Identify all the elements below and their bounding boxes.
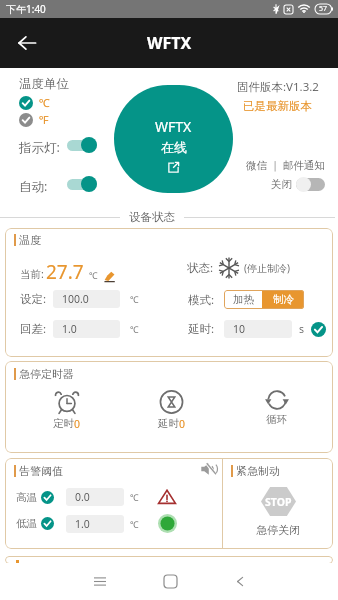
staticText: ℃: [130, 518, 139, 530]
button[interactable]: Switch: [67, 137, 97, 153]
button[interactable]: Back: [9, 25, 45, 61]
staticText: 回差:: [20, 321, 47, 337]
button[interactable]: Switch: [296, 177, 325, 192]
button[interactable]: 1.0: [53, 320, 120, 338]
button[interactable]: 循环: [239, 390, 314, 426]
staticText: STOP: [265, 495, 292, 509]
staticText: 紧急制动: [236, 464, 280, 478]
staticText: 已是最新版本: [243, 99, 312, 113]
staticText: 告警阈值: [19, 464, 63, 478]
staticText: 状态:: [187, 260, 214, 276]
button[interactable]: 定时: [29, 390, 104, 431]
staticText: 设备状态: [129, 210, 175, 224]
staticText: 固件版本:V1.3.2: [237, 79, 319, 95]
button[interactable]: 延时: [134, 390, 209, 431]
button[interactable]: Home: [135, 563, 205, 600]
staticText: 1.0: [75, 517, 90, 531]
staticText: 27.7: [46, 259, 84, 285]
staticText: 自动:: [19, 178, 48, 195]
staticText: 0.0: [75, 490, 90, 504]
button[interactable]: 10: [224, 320, 292, 338]
staticText: 低温: [16, 517, 37, 530]
staticText: 1.0: [62, 322, 77, 336]
staticText: 在线: [161, 139, 187, 155]
staticText: ℃: [89, 269, 98, 281]
button[interactable]: STOP: [228, 487, 328, 537]
button[interactable]: 加热: [224, 290, 262, 309]
staticText: 设定:: [20, 291, 47, 307]
staticText: 延时: [158, 417, 179, 430]
staticText: 关闭: [271, 178, 292, 191]
staticText: WFTX: [155, 117, 192, 136]
staticText: 微信 ｜ 邮件通知: [246, 158, 325, 172]
staticText: (停止制冷): [244, 261, 290, 275]
button[interactable]: WFTX: [114, 85, 233, 193]
staticText: 急停关闭: [256, 523, 300, 537]
staticText: ℃: [39, 95, 50, 110]
staticText: 延时:: [188, 321, 215, 337]
staticText: 下午1:40: [6, 2, 46, 16]
staticText: 循环: [266, 413, 287, 426]
button[interactable]: 1.0: [66, 515, 124, 533]
staticText: 当前:: [20, 267, 44, 281]
staticText: 加热: [233, 293, 254, 306]
button[interactable]: 制冷: [262, 290, 304, 309]
button[interactable]: 100.0: [53, 290, 120, 308]
staticText: ℃: [130, 491, 139, 503]
staticText: 温度: [19, 233, 41, 247]
staticText: 温度单位: [19, 76, 69, 92]
staticText: 指示灯:: [19, 139, 60, 156]
button[interactable]: Mute: [201, 463, 216, 475]
staticText: ℃: [130, 293, 139, 305]
staticText: 100.0: [62, 292, 89, 306]
staticText: 高温: [16, 491, 37, 504]
staticText: ℉: [39, 112, 49, 127]
staticText: 急停定时器: [19, 367, 74, 381]
staticText: ℃: [130, 323, 139, 335]
staticText: WFTX: [147, 32, 192, 54]
button[interactable]: Recents: [64, 563, 135, 600]
staticText: 制冷: [273, 293, 294, 306]
staticText: 0: [179, 417, 186, 431]
staticText: 0: [74, 417, 81, 431]
staticText: 定时: [53, 417, 74, 430]
button[interactable]: 0.0: [66, 488, 124, 506]
button[interactable]: Switch: [67, 176, 97, 192]
staticText: 模式:: [188, 292, 215, 308]
staticText: 57: [319, 4, 328, 14]
staticText: s: [299, 322, 305, 336]
staticText: 10: [233, 322, 246, 336]
button[interactable]: Back: [205, 563, 275, 600]
